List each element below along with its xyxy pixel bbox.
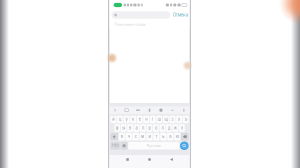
staticText: ч <box>128 134 130 139</box>
staticText: Отмена <box>173 12 188 18</box>
button[interactable]: р <box>147 124 152 132</box>
button[interactable]: Clipboard <box>124 107 130 113</box>
button[interactable]: г <box>150 116 156 123</box>
staticText: р <box>148 126 150 130</box>
staticText: н <box>145 117 147 122</box>
button[interactable]: ф <box>114 124 120 132</box>
staticText: Поисковые слова <box>115 22 146 27</box>
staticText: с <box>135 134 137 139</box>
button[interactable]: ы <box>121 124 127 132</box>
staticText: ф <box>116 126 119 130</box>
staticText: ь <box>162 134 164 139</box>
button[interactable]: GIF <box>135 107 141 113</box>
button[interactable]: Stickers <box>146 107 152 113</box>
staticText: т <box>155 134 157 139</box>
button[interactable]: п <box>140 124 146 132</box>
button[interactable]: More <box>169 107 175 113</box>
button[interactable]: Expand <box>112 107 118 113</box>
button[interactable]: ч <box>126 133 132 140</box>
button[interactable]: Отмена <box>172 11 188 19</box>
button[interactable]: о <box>153 124 159 132</box>
button[interactable]: э <box>179 124 185 132</box>
staticText: ъ <box>185 117 187 122</box>
button[interactable]: Switch language <box>121 142 128 149</box>
staticText: д <box>168 126 170 130</box>
staticText: и <box>148 134 150 139</box>
button[interactable]: Emoji <box>158 107 164 113</box>
staticText: й <box>112 117 114 122</box>
staticText: щ <box>164 117 167 122</box>
staticText: х <box>178 117 180 122</box>
button[interactable]: ъ <box>183 116 189 123</box>
staticText: а <box>136 126 138 130</box>
button[interactable]: у <box>123 116 129 123</box>
button[interactable]: Back <box>167 155 175 163</box>
staticText: ц <box>119 117 121 122</box>
button[interactable]: л <box>159 124 165 132</box>
button[interactable]: Recents <box>123 155 131 163</box>
button[interactable]: т <box>153 133 159 140</box>
staticText: я <box>121 134 123 139</box>
button[interactable]: ц <box>117 116 123 123</box>
button[interactable]: ж <box>172 124 178 132</box>
button[interactable]: Backspace <box>181 133 189 140</box>
button[interactable]: и <box>146 133 153 140</box>
staticText: п <box>142 126 144 130</box>
staticText: б <box>169 134 171 139</box>
button[interactable]: ь <box>160 133 166 140</box>
staticText: з <box>171 117 173 122</box>
button[interactable]: з <box>170 116 175 123</box>
button[interactable] <box>111 11 170 19</box>
button[interactable]: а <box>134 124 139 132</box>
button[interactable]: х <box>176 116 182 123</box>
staticText: ?123 <box>112 144 119 148</box>
button[interactable]: Русский <box>128 142 179 149</box>
staticText: к <box>132 117 134 122</box>
staticText: м <box>141 134 144 139</box>
button[interactable]: ю <box>174 133 180 140</box>
button[interactable]: к <box>130 116 136 123</box>
button[interactable]: ?123 <box>110 142 120 149</box>
button[interactable]: щ <box>163 116 169 123</box>
staticText: ж <box>174 126 177 130</box>
staticText: у <box>125 117 127 122</box>
button[interactable]: Shift <box>110 133 118 140</box>
staticText: о <box>155 126 157 130</box>
button[interactable]: Home <box>145 155 153 163</box>
staticText: л <box>161 126 163 130</box>
button[interactable]: в <box>127 124 133 132</box>
button[interactable]: м <box>139 133 146 140</box>
staticText: Русский <box>147 144 161 148</box>
button[interactable]: я <box>119 133 125 140</box>
button[interactable]: е <box>137 116 143 123</box>
button[interactable]: Settings <box>181 107 187 113</box>
staticText: г <box>152 117 154 122</box>
button[interactable]: Search <box>180 141 189 150</box>
staticText: в <box>129 126 131 130</box>
staticText: ы <box>122 126 125 130</box>
button[interactable]: д <box>166 124 172 132</box>
button[interactable]: б <box>167 133 173 140</box>
staticText: е <box>139 117 141 122</box>
staticText: ю <box>176 134 179 139</box>
button[interactable]: ш <box>156 116 162 123</box>
button[interactable]: й <box>110 116 116 123</box>
staticText: э <box>181 126 183 130</box>
button[interactable]: с <box>132 133 139 140</box>
staticText: ш <box>158 117 161 122</box>
button[interactable]: н <box>143 116 149 123</box>
